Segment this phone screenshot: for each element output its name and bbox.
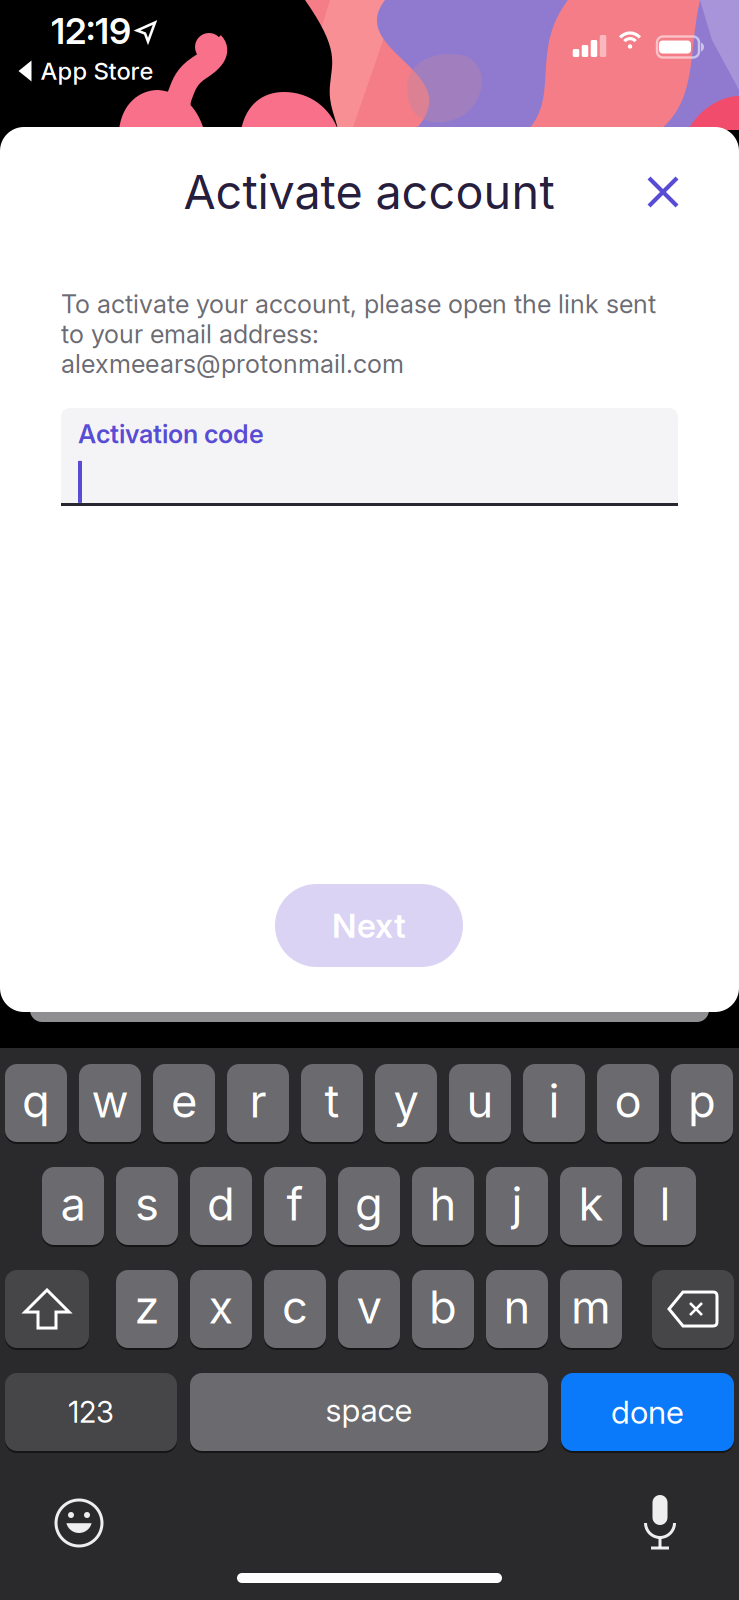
button[interactable]: h xyxy=(412,1167,474,1245)
staticText: to your email address: xyxy=(61,319,319,349)
staticText: w xyxy=(91,1074,128,1128)
button[interactable]: q xyxy=(5,1064,67,1142)
button[interactable]: r xyxy=(227,1064,289,1142)
staticText: done xyxy=(611,1393,684,1431)
staticText: s xyxy=(135,1177,159,1231)
button[interactable]: Emoji xyxy=(54,1498,104,1548)
staticText: u xyxy=(466,1074,493,1128)
button[interactable]: y xyxy=(375,1064,437,1142)
button[interactable]: i xyxy=(523,1064,585,1142)
staticText: f xyxy=(286,1177,303,1231)
button[interactable]: k xyxy=(560,1167,622,1245)
button[interactable]: b xyxy=(412,1270,474,1348)
button[interactable]: z xyxy=(116,1270,178,1348)
button[interactable]: Shift xyxy=(5,1270,89,1348)
button[interactable]: Activation code xyxy=(61,408,678,506)
staticText: p xyxy=(688,1074,716,1128)
staticText: a xyxy=(60,1177,85,1231)
staticText: Activation code xyxy=(78,419,264,449)
staticText: j xyxy=(511,1177,522,1231)
staticText: r xyxy=(249,1074,266,1128)
button[interactable]: s xyxy=(116,1167,178,1245)
button[interactable]: o xyxy=(597,1064,659,1142)
staticText: space xyxy=(325,1391,412,1429)
button[interactable]: Delete xyxy=(652,1270,734,1348)
button[interactable]: v xyxy=(338,1270,400,1348)
button[interactable]: f xyxy=(264,1167,326,1245)
staticText: h xyxy=(429,1177,456,1231)
staticText: l xyxy=(659,1177,670,1231)
staticText: i xyxy=(548,1074,559,1128)
button[interactable]: m xyxy=(560,1270,622,1348)
button[interactable]: 123 xyxy=(5,1373,177,1451)
button[interactable]: e xyxy=(153,1064,215,1142)
staticText: c xyxy=(282,1280,308,1334)
button[interactable]: j xyxy=(486,1167,548,1245)
staticText: z xyxy=(134,1280,159,1334)
staticText: alexmeears@protonmail.com xyxy=(61,349,404,379)
button[interactable]: p xyxy=(671,1064,733,1142)
button[interactable]: a xyxy=(42,1167,104,1245)
staticText: k xyxy=(578,1177,603,1231)
staticText: n xyxy=(503,1280,530,1334)
staticText: v xyxy=(356,1280,381,1334)
button[interactable]: g xyxy=(338,1167,400,1245)
button[interactable]: done xyxy=(561,1373,734,1451)
button[interactable]: Next xyxy=(275,884,463,967)
button[interactable]: App Store xyxy=(18,57,153,85)
staticText: Activate account xyxy=(183,164,554,220)
button[interactable]: space xyxy=(190,1373,548,1451)
staticText: App Store xyxy=(40,57,153,85)
staticText: m xyxy=(571,1280,611,1334)
staticText: q xyxy=(22,1074,50,1128)
staticText: Next xyxy=(332,906,406,945)
button[interactable]: Close xyxy=(646,175,680,209)
staticText: 12:19 xyxy=(51,10,131,52)
button[interactable]: d xyxy=(190,1167,252,1245)
staticText: g xyxy=(355,1177,383,1231)
button[interactable]: Dictation xyxy=(640,1494,680,1550)
button[interactable]: t xyxy=(301,1064,363,1142)
staticText: e xyxy=(171,1074,197,1128)
button[interactable]: u xyxy=(449,1064,511,1142)
staticText: 123 xyxy=(68,1395,114,1429)
staticText: y xyxy=(393,1074,418,1128)
button[interactable]: x xyxy=(190,1270,252,1348)
staticText: t xyxy=(324,1074,339,1128)
staticText: x xyxy=(208,1280,233,1334)
staticText: d xyxy=(207,1177,235,1231)
staticText: b xyxy=(429,1280,457,1334)
button[interactable]: w xyxy=(79,1064,141,1142)
button[interactable]: l xyxy=(634,1167,696,1245)
button[interactable]: c xyxy=(264,1270,326,1348)
staticText: To activate your account, please open th… xyxy=(61,289,656,319)
button[interactable]: n xyxy=(486,1270,548,1348)
staticText: o xyxy=(614,1074,641,1128)
